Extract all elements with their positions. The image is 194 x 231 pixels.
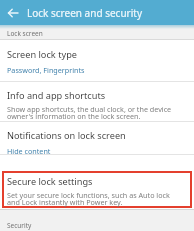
button[interactable]: Info and app shortcuts [0,82,194,122]
staticText: Lock screen [7,29,43,38]
staticText: Set your secure lock functions, such as … [7,190,170,207]
button[interactable] [0,0,25,25]
button[interactable]: Secure lock settings [0,155,194,209]
staticText: Screen lock type [7,48,77,61]
staticText: Hide content [7,146,51,155]
staticText: Lock screen and security [27,6,142,20]
button[interactable]: Notifications on lock screen [0,122,194,155]
staticText: Show app shortcuts, the dual clock, or t… [7,104,172,121]
button[interactable]: Screen lock type [0,40,194,82]
staticText: Notifications on lock screen [7,129,126,142]
staticText: Secure lock settings [7,175,93,188]
staticText: Security [7,221,32,230]
staticText: Info and app shortcuts [7,89,106,102]
staticText: Password, Fingerprints [7,65,85,75]
